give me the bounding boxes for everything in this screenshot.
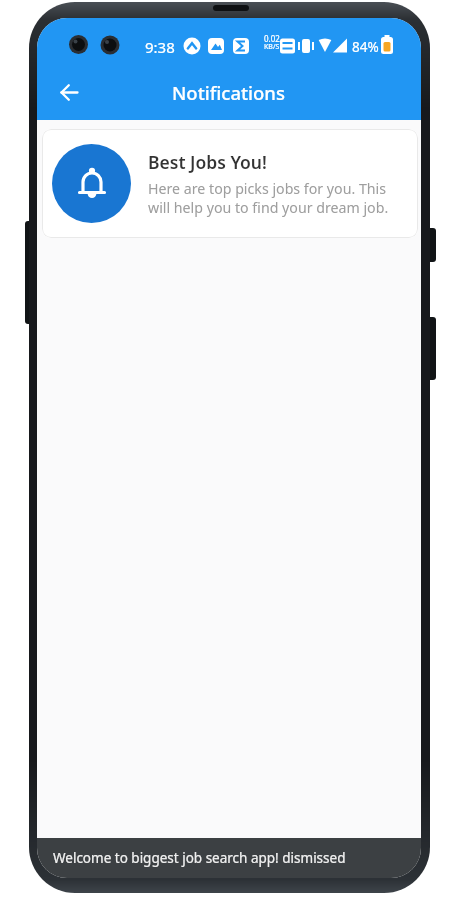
staticText: 84% bbox=[352, 38, 379, 56]
staticText: KB/S bbox=[264, 42, 280, 52]
staticText: 9:38 bbox=[145, 37, 175, 57]
button[interactable] bbox=[49, 72, 89, 112]
button[interactable]: Welcome to biggest job search app! dismi… bbox=[37, 838, 421, 878]
staticText: Notifications bbox=[172, 80, 285, 105]
staticText: 0.02 bbox=[264, 33, 280, 44]
button[interactable]: Best Jobs You! bbox=[42, 129, 418, 238]
staticText: Best Jobs You! bbox=[148, 150, 267, 174]
staticText: Here are top picks jobs for you. This wi… bbox=[148, 179, 389, 217]
staticText: Welcome to biggest job search app! dismi… bbox=[53, 849, 346, 867]
